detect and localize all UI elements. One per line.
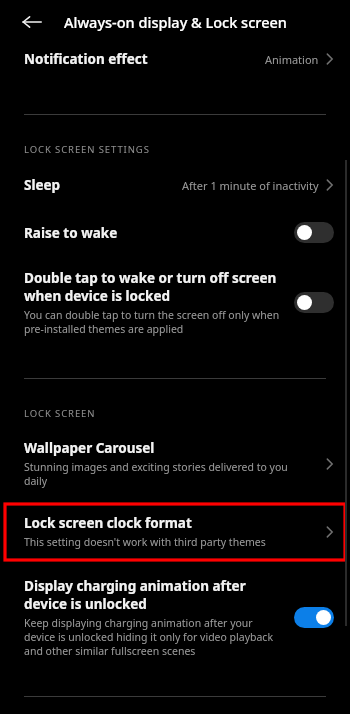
- staticText: Double tap to wake or turn off screen wh…: [24, 269, 282, 305]
- staticText: After 1 minute of inactivity: [182, 178, 319, 193]
- staticText: Lock screen clock format: [24, 514, 192, 532]
- staticText: Always-on display & Lock screen: [64, 12, 287, 32]
- staticText: This setting doesn't work with third par…: [24, 535, 266, 549]
- button[interactable]: Display charging animation after device …: [0, 560, 350, 658]
- staticText: Animation: [265, 52, 319, 67]
- staticText: Sleep: [24, 176, 61, 194]
- staticText: LOCK SCREEN: [24, 407, 96, 420]
- button[interactable]: [294, 222, 334, 243]
- button[interactable]: [294, 607, 334, 628]
- button[interactable]: Back: [18, 8, 46, 36]
- staticText: Raise to wake: [24, 224, 118, 242]
- button[interactable]: Lock screen clock format: [5, 504, 345, 560]
- staticText: Keep displaying charging animation after…: [24, 616, 282, 658]
- button[interactable]: Notification effect: [0, 44, 350, 76]
- button[interactable]: Wallpaper Carousel: [0, 420, 350, 488]
- button[interactable]: Double tap to wake or turn off screen wh…: [0, 243, 350, 336]
- button[interactable]: Raise to wake: [0, 194, 350, 243]
- staticText: Wallpaper Carousel: [24, 439, 155, 457]
- staticText: Notification effect: [24, 50, 148, 68]
- button[interactable]: [294, 292, 334, 313]
- staticText: You can double tap to turn the screen of…: [24, 308, 282, 336]
- staticText: Stunning images and exciting stories del…: [24, 460, 312, 488]
- staticText: LOCK SCREEN SETTINGS: [24, 143, 150, 156]
- button[interactable]: Sleep: [0, 156, 350, 194]
- staticText: Display charging animation after device …: [24, 577, 282, 613]
